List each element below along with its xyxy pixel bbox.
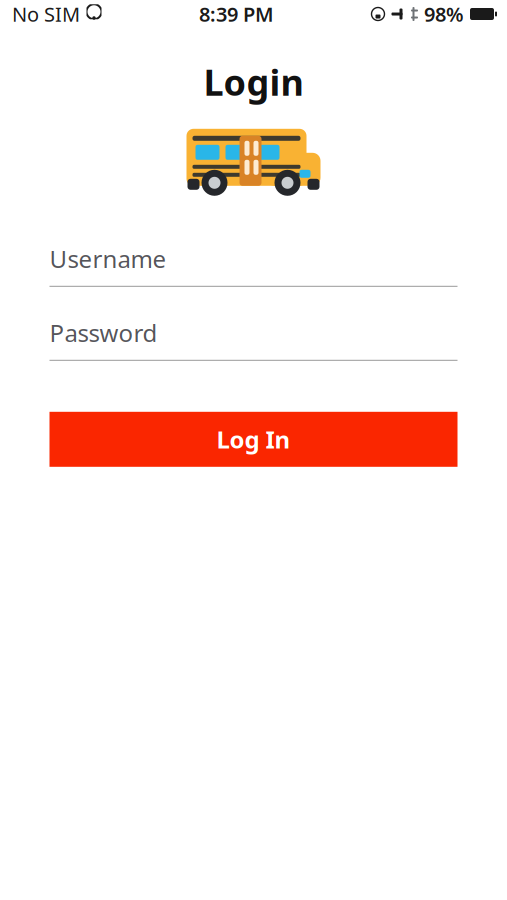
staticText: Username xyxy=(49,243,166,275)
button[interactable]: Log In xyxy=(49,412,457,467)
staticText: 8:39 PM xyxy=(199,1,274,27)
staticText: Password xyxy=(49,317,157,349)
staticText: 98% xyxy=(424,1,464,27)
staticText: Log In xyxy=(216,423,290,455)
staticText: Login xyxy=(203,58,303,106)
staticText: No SIM xyxy=(12,1,80,27)
